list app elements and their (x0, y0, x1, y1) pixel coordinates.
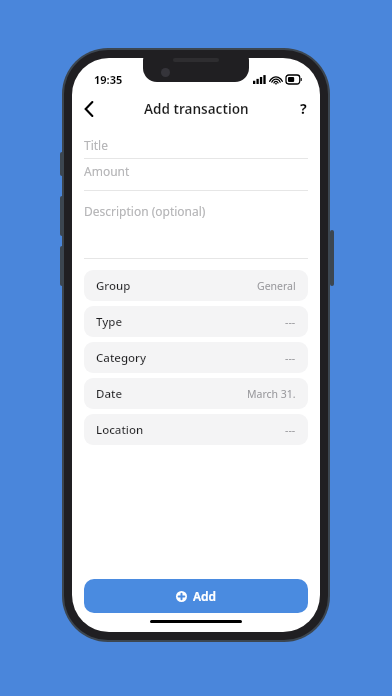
button[interactable]: Group (84, 270, 308, 301)
staticText: Date (96, 386, 122, 402)
button[interactable]: Type (84, 306, 308, 337)
staticText: Group (96, 278, 131, 294)
staticText: Title (84, 137, 108, 153)
button[interactable]: Location (84, 414, 308, 445)
staticText: --- (285, 315, 296, 329)
button[interactable]: Amount (84, 159, 308, 191)
staticText: General (257, 279, 296, 293)
staticText: Type (96, 314, 123, 330)
button[interactable]: Date (84, 378, 308, 409)
button[interactable]: Title (84, 133, 308, 159)
button[interactable]: Description (optional) (84, 191, 308, 259)
staticText: --- (285, 351, 296, 365)
staticText: Amount (84, 163, 130, 179)
staticText: Category (96, 350, 146, 366)
staticText: Location (96, 422, 144, 438)
staticText: --- (285, 423, 296, 437)
staticText: Description (optional) (84, 203, 206, 219)
staticText: Add transaction (144, 100, 249, 118)
staticText: ? (300, 99, 307, 118)
staticText: March 31. (247, 387, 296, 401)
staticText: Add (193, 588, 217, 604)
staticText: 19:35 (94, 72, 123, 87)
button[interactable]: Add (84, 579, 308, 613)
button[interactable]: Category (84, 342, 308, 373)
button[interactable]: Help (286, 92, 320, 125)
button[interactable]: Back (72, 92, 106, 125)
